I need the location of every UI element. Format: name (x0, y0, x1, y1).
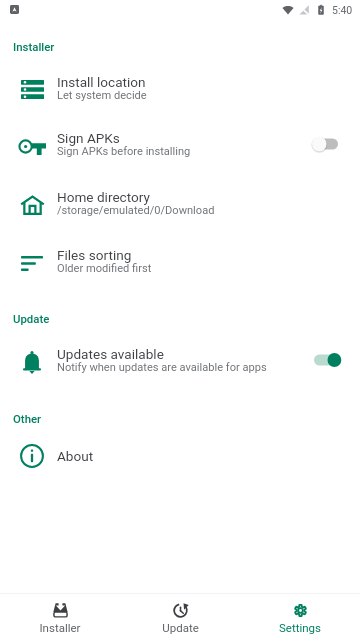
staticText: Installer (13, 40, 55, 53)
staticText: Update (162, 621, 199, 634)
staticText: Older modified first (57, 262, 152, 275)
button[interactable]: Installer (0, 594, 120, 640)
staticText: Notify when updates are available for ap… (57, 361, 267, 374)
button[interactable]: Files sorting (0, 232, 360, 290)
staticText: Updates available (57, 346, 164, 362)
button[interactable]: About (0, 427, 360, 485)
staticText: /storage/emulated/0/Download (57, 204, 215, 217)
staticText: Install location (57, 74, 146, 90)
staticText: Settings (279, 621, 321, 634)
staticText: About (57, 448, 94, 464)
button[interactable]: Home directory (0, 174, 360, 232)
button[interactable]: Toggle off (312, 133, 342, 155)
button[interactable]: Sign APKs (0, 115, 360, 173)
staticText: Other (13, 412, 42, 425)
staticText: Installer (39, 621, 81, 634)
button[interactable]: Updates available (0, 331, 360, 389)
staticText: Sign APKs before installing (57, 145, 191, 158)
button[interactable]: Update (120, 594, 240, 640)
button[interactable]: Install location (0, 59, 360, 117)
staticText: Update (13, 312, 50, 325)
staticText: Sign APKs (57, 130, 120, 146)
staticText: Home directory (57, 189, 150, 205)
button[interactable]: Settings (240, 594, 360, 640)
button[interactable]: Toggle on (312, 349, 342, 371)
staticText: Let system decide (57, 89, 147, 102)
staticText: Files sorting (57, 247, 132, 263)
staticText: 5:40 (332, 4, 353, 16)
